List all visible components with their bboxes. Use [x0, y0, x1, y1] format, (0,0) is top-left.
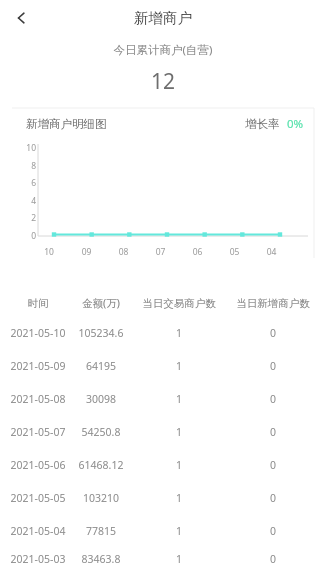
staticText: 4 — [12, 195, 36, 207]
staticText: 83463.8 — [70, 552, 132, 566]
staticText: 2021-05-07 — [6, 425, 70, 439]
staticText: 0% — [287, 116, 304, 132]
button[interactable]: 2021-05-07 — [0, 415, 326, 448]
staticText: 1 — [132, 491, 226, 505]
staticText: 金额(万) — [70, 296, 132, 310]
staticText: 0 — [226, 326, 320, 340]
button[interactable]: 2021-05-10 — [0, 316, 326, 349]
staticText: 新增商户明细图 — [26, 117, 107, 131]
staticText: 0 — [226, 425, 320, 439]
staticText: 0 — [12, 230, 36, 242]
staticText: 1 — [132, 326, 226, 340]
staticText: 0 — [226, 359, 320, 373]
button[interactable]: 2021-05-09 — [0, 349, 326, 382]
staticText: 10 — [30, 246, 68, 258]
staticText: 1 — [132, 359, 226, 373]
staticText: 1 — [132, 524, 226, 538]
staticText: 09 — [68, 246, 105, 258]
staticText: 2021-05-09 — [6, 359, 70, 373]
staticText: 0 — [226, 552, 320, 566]
staticText: 8 — [12, 160, 36, 172]
staticText: 0 — [226, 491, 320, 505]
staticText: 61468.12 — [70, 458, 132, 472]
button[interactable]: 2021-05-03 — [0, 547, 326, 570]
staticText: 当日交易商户数 — [132, 297, 226, 310]
staticText: 05 — [216, 246, 253, 258]
staticText: 增长率 — [245, 117, 280, 131]
staticText: 时间 — [6, 297, 70, 310]
staticText: 2 — [12, 212, 36, 224]
staticText: 当日新增商户数 — [226, 297, 320, 310]
staticText: 105234.6 — [70, 326, 132, 340]
staticText: 54250.8 — [70, 425, 132, 439]
staticText: 2021-05-06 — [6, 458, 70, 472]
staticText: 0 — [226, 392, 320, 406]
staticText: 6 — [12, 177, 36, 189]
staticText: 新增商户 — [134, 9, 192, 27]
button[interactable]: 2021-05-06 — [0, 448, 326, 481]
staticText: 1 — [132, 392, 226, 406]
staticText: 64195 — [70, 359, 132, 373]
staticText: 04 — [253, 246, 290, 258]
staticText: 30098 — [70, 392, 132, 406]
staticText: 1 — [132, 425, 226, 439]
button[interactable]: 2021-05-05 — [0, 481, 326, 514]
staticText: 2021-05-05 — [6, 491, 70, 505]
staticText: 10 — [12, 142, 36, 154]
staticText: 2021-05-10 — [6, 326, 70, 340]
staticText: 12 — [0, 67, 326, 96]
staticText: 2021-05-04 — [6, 524, 70, 538]
staticText: 1 — [132, 552, 226, 566]
staticText: 今日累计商户(自营) — [0, 42, 326, 58]
staticText: 0 — [226, 524, 320, 538]
staticText: 1 — [132, 458, 226, 472]
button[interactable]: 2021-05-04 — [0, 514, 326, 547]
staticText: 77815 — [70, 524, 132, 538]
staticText: 2021-05-03 — [6, 552, 70, 566]
staticText: 103210 — [70, 491, 132, 505]
staticText: 0 — [226, 458, 320, 472]
staticText: 06 — [179, 246, 216, 258]
button[interactable]: 2021-05-08 — [0, 382, 326, 415]
button[interactable]: Back — [6, 2, 38, 34]
staticText: 2021-05-08 — [6, 392, 70, 406]
staticText: 07 — [142, 246, 179, 258]
staticText: 08 — [105, 246, 142, 258]
